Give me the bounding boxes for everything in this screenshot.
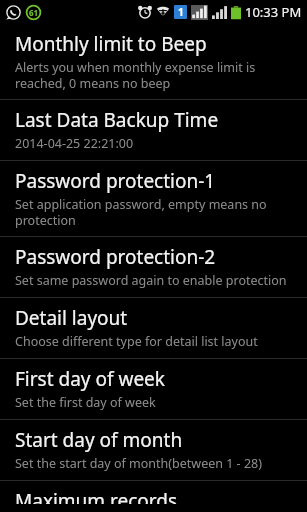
- button[interactable]: Last Data Backup Time: [0, 100, 307, 160]
- button[interactable]: First day of week: [0, 359, 307, 419]
- staticText: 61: [29, 7, 39, 18]
- staticText: 10:33 PM: [245, 3, 302, 21]
- staticText: Password protection-1: [15, 168, 216, 194]
- staticText: 1: [178, 5, 184, 19]
- staticText: Start day of month: [15, 427, 183, 453]
- staticText: Set the first day of week: [15, 394, 156, 411]
- button[interactable]: Start day of month: [0, 420, 307, 480]
- staticText: Choose different type for detail list la…: [15, 333, 258, 350]
- staticText: Maximum records: [15, 488, 178, 504]
- staticText: Monthly limit to Beep: [15, 31, 207, 57]
- button[interactable]: Password protection-2: [0, 237, 307, 297]
- button[interactable]: Detail layout: [0, 298, 307, 358]
- staticText: First day of week: [15, 366, 165, 392]
- staticText: Last Data Backup Time: [15, 107, 219, 133]
- staticText: Set the start day of month(between 1 - 2…: [15, 455, 262, 472]
- button[interactable]: Monthly limit to Beep: [0, 24, 307, 99]
- button[interactable]: Password protection-1: [0, 161, 307, 236]
- staticText: 2014-04-25 22:21:00: [15, 135, 134, 152]
- button[interactable]: Maximum records: [0, 481, 307, 512]
- staticText: Set same password again to enable protec…: [15, 272, 287, 289]
- staticText: Set application password, empty means no…: [15, 196, 295, 228]
- staticText: Password protection-2: [15, 244, 216, 270]
- staticText: Alerts you when monthly expense limit is…: [15, 59, 295, 91]
- staticText: Detail layout: [15, 305, 128, 331]
